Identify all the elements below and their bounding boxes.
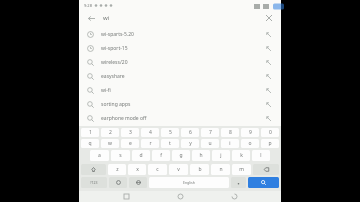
button[interactable]: Insert easyshare bbox=[264, 72, 273, 81]
button[interactable]: d bbox=[132, 150, 150, 161]
button[interactable]: j bbox=[212, 150, 230, 161]
button[interactable]: Period bbox=[231, 177, 246, 188]
button[interactable]: Back bbox=[85, 12, 97, 24]
button[interactable]: wi-fi bbox=[79, 83, 281, 97]
button[interactable]: Insert wireless/20 bbox=[264, 58, 273, 67]
button[interactable]: h bbox=[192, 150, 210, 161]
staticText: d bbox=[139, 152, 143, 159]
staticText: q bbox=[88, 140, 92, 147]
staticText: English bbox=[183, 180, 195, 185]
staticText: a bbox=[98, 152, 101, 159]
button[interactable]: wi-sport-15 bbox=[79, 41, 281, 55]
staticText: ?123 bbox=[90, 180, 98, 185]
staticText: 3 bbox=[129, 129, 132, 136]
button[interactable]: k bbox=[232, 150, 250, 161]
button[interactable]: English bbox=[149, 177, 229, 188]
button[interactable]: 4 bbox=[141, 128, 159, 137]
staticText: k bbox=[240, 152, 243, 159]
button[interactable]: m bbox=[232, 164, 251, 175]
button[interactable]: 8 bbox=[221, 128, 239, 137]
staticText: t bbox=[169, 140, 171, 147]
button[interactable]: c bbox=[148, 164, 167, 175]
button[interactable]: i bbox=[221, 139, 239, 148]
staticText: 7 bbox=[209, 129, 212, 136]
staticText: z bbox=[116, 166, 119, 173]
button[interactable]: z bbox=[108, 164, 126, 175]
button[interactable]: 0 bbox=[261, 128, 279, 137]
button[interactable]: ?123 bbox=[81, 177, 107, 188]
staticText: 5 bbox=[169, 129, 172, 136]
staticText: 6 bbox=[189, 129, 192, 136]
button[interactable]: x bbox=[128, 164, 146, 175]
button[interactable]: wireless/20 bbox=[79, 55, 281, 69]
button[interactable]: Search bbox=[248, 177, 279, 188]
staticText: w bbox=[108, 140, 112, 147]
button[interactable]: Insert wi-fi bbox=[264, 86, 273, 95]
staticText: wi-sparts-5.20 bbox=[101, 31, 264, 38]
button[interactable]: 5 bbox=[161, 128, 179, 137]
button[interactable]: Insert wi-sparts-5.20 bbox=[264, 30, 273, 39]
button[interactable]: 3 bbox=[121, 128, 139, 137]
button[interactable]: g bbox=[172, 150, 190, 161]
staticText: 0 bbox=[269, 129, 272, 136]
button[interactable]: o bbox=[241, 139, 259, 148]
button[interactable]: u bbox=[201, 139, 219, 148]
button[interactable]: Emoji bbox=[109, 177, 127, 188]
button[interactable]: e bbox=[121, 139, 139, 148]
button[interactable]: Insert earphone mode off bbox=[264, 114, 273, 123]
staticText: easyshare bbox=[101, 73, 264, 80]
button[interactable]: 9 bbox=[241, 128, 259, 137]
button[interactable]: v bbox=[169, 164, 188, 175]
staticText: u bbox=[208, 140, 212, 147]
button[interactable]: wi-sparts-5.20 bbox=[79, 27, 281, 41]
button[interactable]: a bbox=[90, 150, 109, 161]
staticText: x bbox=[136, 166, 139, 173]
button[interactable]: Insert sorting apps bbox=[264, 100, 273, 109]
button[interactable]: l bbox=[252, 150, 270, 161]
staticText: earphone mode off bbox=[101, 115, 264, 122]
button[interactable]: earphone mode off bbox=[79, 111, 281, 125]
button[interactable]: 1 bbox=[81, 128, 99, 137]
button[interactable]: 2 bbox=[101, 128, 119, 137]
button[interactable]: s bbox=[111, 150, 130, 161]
staticText: sorting apps bbox=[101, 101, 264, 108]
staticText: wi bbox=[103, 14, 263, 22]
staticText: y bbox=[189, 140, 192, 147]
staticText: n bbox=[219, 166, 223, 173]
button[interactable]: Home bbox=[173, 191, 187, 202]
staticText: l bbox=[260, 152, 262, 159]
button[interactable]: Backspace bbox=[253, 164, 279, 175]
button[interactable]: b bbox=[190, 164, 209, 175]
button[interactable]: 6 bbox=[181, 128, 199, 137]
staticText: e bbox=[129, 140, 132, 147]
button[interactable]: q bbox=[81, 139, 99, 148]
staticText: v bbox=[177, 166, 180, 173]
button[interactable]: y bbox=[181, 139, 199, 148]
staticText: r bbox=[149, 140, 152, 147]
button[interactable]: sorting apps bbox=[79, 97, 281, 111]
button[interactable]: Back bbox=[227, 191, 241, 202]
staticText: o bbox=[248, 140, 252, 147]
button[interactable]: Insert wi-sport-15 bbox=[264, 44, 273, 53]
staticText: i bbox=[229, 140, 231, 147]
button[interactable]: 7 bbox=[201, 128, 219, 137]
staticText: wi-sport-15 bbox=[101, 45, 264, 52]
button[interactable]: p bbox=[261, 139, 279, 148]
staticText: 9:28 bbox=[84, 3, 92, 8]
button[interactable]: Language bbox=[129, 177, 147, 188]
staticText: c bbox=[156, 166, 159, 173]
button[interactable]: Shift bbox=[81, 164, 106, 175]
staticText: g bbox=[179, 152, 183, 159]
button[interactable]: t bbox=[161, 139, 179, 148]
button[interactable]: Clear bbox=[263, 12, 275, 24]
staticText: wireless/20 bbox=[101, 59, 264, 66]
staticText: b bbox=[198, 166, 202, 173]
button[interactable]: easyshare bbox=[79, 69, 281, 83]
button[interactable]: w bbox=[101, 139, 119, 148]
button[interactable]: Recents bbox=[119, 191, 133, 202]
button[interactable]: r bbox=[141, 139, 159, 148]
button[interactable]: n bbox=[211, 164, 230, 175]
button[interactable]: f bbox=[152, 150, 170, 161]
staticText: h bbox=[199, 152, 203, 159]
staticText: 9 bbox=[249, 129, 252, 136]
